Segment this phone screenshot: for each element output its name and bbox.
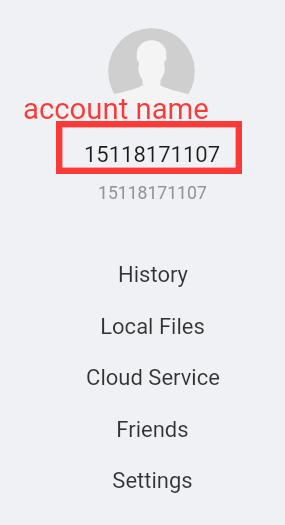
button[interactable]: Settings [20,468,285,506]
staticText: Settings [112,468,193,494]
button[interactable]: History [20,262,285,300]
staticText: 15118171107 [84,142,221,168]
staticText: History [118,262,188,288]
staticText: account name [23,92,209,126]
button[interactable]: Cloud Service [20,365,285,403]
staticText: 15118171107 [98,183,207,204]
staticText: Local Files [100,314,205,340]
button[interactable]: Friends [20,417,285,455]
staticText: Friends [116,417,189,443]
staticText: Cloud Service [86,365,220,391]
button[interactable]: Profile photo [108,28,195,115]
button[interactable]: Local Files [20,314,285,352]
